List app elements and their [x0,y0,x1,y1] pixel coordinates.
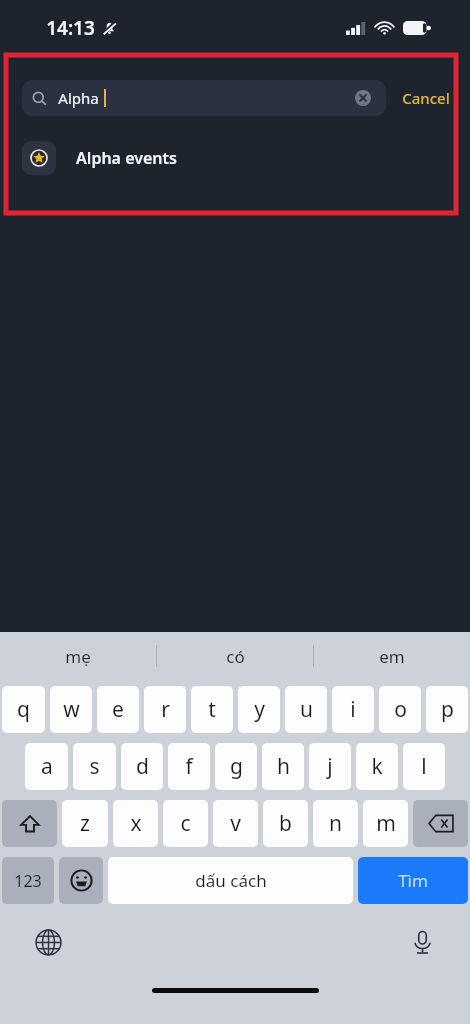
staticText: r [161,695,170,724]
button[interactable]: l [403,743,445,790]
staticText: em [379,645,405,668]
button[interactable]: s [73,743,116,790]
staticText: v [230,809,241,838]
button[interactable]: f [168,743,210,790]
button[interactable]: Emoji [59,857,103,904]
button[interactable]: x [113,800,158,847]
button[interactable]: Alpha [22,80,386,116]
staticText: a [41,752,53,781]
button[interactable]: Change keyboard language [30,924,66,960]
button[interactable]: có [157,632,313,680]
staticText: u [300,695,313,724]
button[interactable]: e [97,686,139,733]
staticText: 14:13 [46,15,95,41]
staticText: m [376,809,396,838]
button[interactable]: u [285,686,327,733]
staticText: t [208,695,216,724]
staticText: f [185,752,193,781]
button[interactable]: Clear text [350,85,376,111]
button[interactable]: dấu cách [108,857,353,904]
staticText: p [441,695,454,724]
button[interactable]: t [191,686,233,733]
staticText: w [63,695,80,724]
button[interactable]: v [213,800,258,847]
staticText: dấu cách [195,869,267,892]
button[interactable]: Cancel [398,80,454,116]
button[interactable]: k [356,743,398,790]
staticText: g [230,752,243,781]
staticText: s [89,752,100,781]
staticText: i [350,695,356,724]
staticText: z [80,809,90,838]
button[interactable]: r [144,686,186,733]
button[interactable]: y [238,686,280,733]
button[interactable]: h [262,743,304,790]
staticText: k [371,752,383,781]
button[interactable]: Voice input [404,924,440,960]
button[interactable]: g [215,743,257,790]
button[interactable]: Backspace [413,800,468,847]
button[interactable]: w [50,686,92,733]
staticText: h [277,752,290,781]
button[interactable]: o [379,686,421,733]
staticText: b [279,809,292,838]
button[interactable]: em [314,632,470,680]
staticText: n [329,809,342,838]
staticText: q [17,695,30,724]
button[interactable]: a [25,743,68,790]
button[interactable]: z [62,800,108,847]
staticText: mẹ [65,645,91,668]
button[interactable]: Alpha events [0,135,470,181]
button[interactable]: Tìm [358,857,468,904]
button[interactable]: m [363,800,408,847]
button[interactable]: p [426,686,468,733]
staticText: 123 [14,870,42,892]
staticText: e [112,695,124,724]
button[interactable]: c [163,800,208,847]
staticText: d [136,752,149,781]
staticText: Cancel [402,88,450,108]
staticText: c [180,809,191,838]
staticText: y [254,695,265,724]
button[interactable]: i [332,686,374,733]
staticText: Alpha events [76,147,177,169]
staticText: j [327,752,333,781]
staticText: l [421,752,427,781]
button[interactable]: n [313,800,358,847]
staticText: o [394,695,407,724]
staticText: Tìm [398,869,428,892]
button[interactable]: mẹ [0,632,156,680]
button[interactable]: j [309,743,351,790]
button[interactable]: b [263,800,308,847]
button[interactable]: q [2,686,45,733]
button[interactable]: 123 [2,857,54,904]
staticText: Alpha [58,88,99,108]
button[interactable]: d [121,743,163,790]
staticText: có [226,645,245,668]
button[interactable]: Shift [2,800,57,847]
staticText: x [130,809,142,838]
